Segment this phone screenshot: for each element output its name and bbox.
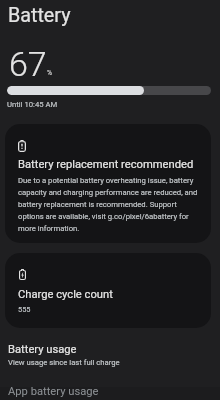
button[interactable]: Battery usage (0, 341, 220, 373)
staticText: Due to a potential battery overheating i… (18, 174, 211, 234)
staticText: App battery usage (8, 385, 99, 398)
staticText: % (47, 69, 52, 77)
staticText: 555 (18, 305, 31, 314)
other: Battery alert (18, 140, 26, 152)
button[interactable]: Battery alert (5, 124, 211, 243)
staticText: 67 (9, 44, 47, 84)
staticText: Charge cycle count (18, 288, 113, 301)
staticText: Battery replacement recommended (18, 158, 194, 171)
staticText: Battery usage (8, 343, 77, 356)
button[interactable]: App battery usage (0, 387, 220, 400)
button[interactable]: Battery cycles (5, 253, 211, 328)
staticText: View usage since last full charge (8, 358, 120, 367)
other: Battery cycles (19, 269, 26, 280)
staticText: Battery (8, 4, 71, 27)
staticText: Until 10:45 AM (7, 100, 58, 109)
